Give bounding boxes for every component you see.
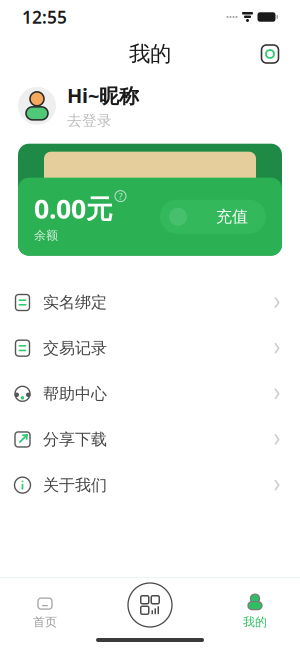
button[interactable]: Scan [126, 587, 174, 635]
staticText: 我的 [243, 615, 267, 629]
staticText: 交易记录 [43, 338, 107, 358]
button[interactable]: 我的 [210, 586, 300, 636]
staticText: 关于我们 [43, 475, 107, 495]
staticText: 分享下载 [43, 430, 107, 449]
staticText: 充值 [216, 207, 248, 227]
staticText: 我的 [129, 41, 171, 67]
staticText: Hi~昵称 [67, 82, 139, 109]
button[interactable]: 分享下载 [14, 417, 286, 462]
button[interactable]: Hi~昵称 [0, 74, 300, 144]
staticText: 帮助中心 [43, 384, 107, 404]
staticText: ? [118, 190, 122, 202]
button[interactable]: 交易记录 [14, 325, 286, 371]
staticText: 去登录 [67, 112, 112, 130]
button[interactable]: 关于我们 [14, 462, 286, 508]
staticText: 12:55 [22, 5, 67, 28]
button[interactable]: Settings [254, 38, 286, 70]
staticText: 0.00元 [34, 191, 113, 226]
staticText: 余额 [34, 228, 58, 243]
button[interactable]: 首页 [0, 586, 90, 636]
button[interactable]: 帮助中心 [14, 371, 286, 417]
button[interactable]: 实名绑定 [14, 280, 286, 325]
staticText: 实名绑定 [43, 293, 107, 312]
staticText: 首页 [33, 615, 57, 629]
button[interactable]: 充值 [160, 200, 266, 234]
